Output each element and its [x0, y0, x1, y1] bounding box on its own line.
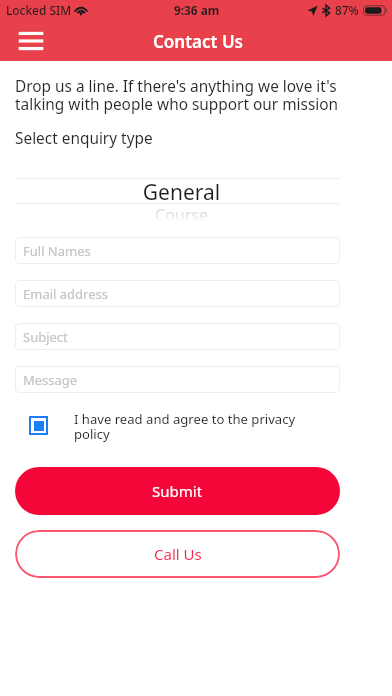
staticText: Course	[15, 204, 348, 226]
button[interactable]: Full Names	[15, 237, 340, 264]
staticText: Message	[23, 371, 78, 389]
staticText: Contact Us	[153, 30, 243, 53]
button[interactable]: Call Us	[15, 530, 340, 578]
staticText: Select enquiry type	[15, 128, 153, 149]
staticText: Call Us	[154, 544, 202, 564]
staticText: I have read and agree to the privacy pol…	[74, 410, 297, 443]
button[interactable]: Message	[15, 366, 340, 393]
staticText: Drop us a line. If there's anything we l…	[15, 76, 342, 115]
staticText: 87%	[335, 2, 359, 18]
button[interactable]: Submit	[15, 467, 340, 515]
staticText: Subject	[23, 328, 68, 346]
button[interactable]: I have read and agree to the privacy pol…	[29, 410, 297, 443]
staticText: General	[15, 178, 348, 207]
button[interactable]: Open navigation menu	[11, 21, 51, 61]
staticText: Submit	[152, 481, 203, 501]
button[interactable]: Enquiry type picker	[0, 178, 392, 220]
staticText: Locked SIM	[6, 2, 72, 18]
staticText: Email address	[23, 285, 108, 303]
button[interactable]: Subject	[15, 323, 340, 350]
button[interactable]: Email address	[15, 280, 340, 307]
staticText: 9:36 am	[174, 2, 220, 18]
staticText: Full Names	[23, 242, 91, 260]
